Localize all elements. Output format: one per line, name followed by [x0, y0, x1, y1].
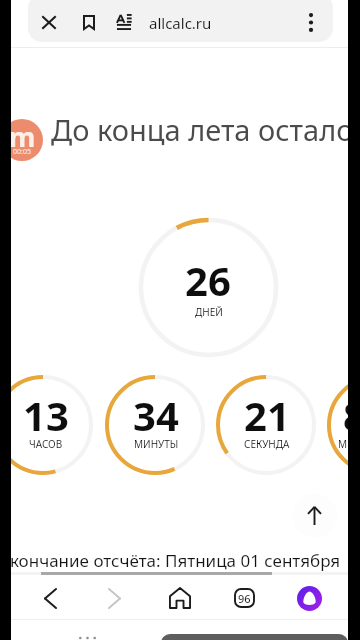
staticText: СЕКУНДА — [244, 437, 290, 451]
staticText: Окончание отсчёта: Пятница 01 сентября — [0, 549, 341, 572]
button[interactable]: Bookmark — [71, 3, 107, 41]
button[interactable]: More options — [293, 3, 329, 41]
staticText: 800 — [343, 388, 360, 442]
staticText: 00:05 — [13, 147, 31, 157]
staticText: 21 — [244, 388, 290, 442]
staticText: 26 — [185, 253, 231, 307]
button[interactable]: Forward — [82, 577, 147, 619]
button[interactable]: Alice assistant — [277, 577, 342, 619]
button[interactable]: Reader mode — [106, 3, 142, 41]
staticText: ДНЕЙ — [195, 305, 223, 319]
button[interactable]: Back — [18, 577, 82, 619]
button[interactable]: Close tab — [31, 3, 67, 41]
staticText: 13 — [23, 388, 69, 442]
button[interactable]: Scroll to top — [292, 493, 337, 538]
button[interactable]: Advertisement timer — [1, 119, 43, 161]
button[interactable]: Home — [147, 577, 212, 619]
staticText: До конца лета осталось — [51, 110, 360, 149]
staticText: m — [9, 119, 36, 155]
staticText: ЧАСОВ — [29, 437, 63, 451]
button[interactable]: Tabs: 96 open — [212, 577, 277, 619]
staticText: МИНУТЫ — [134, 437, 179, 451]
button[interactable]: allcalc.ru — [149, 13, 259, 33]
staticText: 34 — [133, 388, 179, 442]
staticText: МИЛЛИСЕКУНД — [338, 437, 360, 451]
staticText: allcalc.ru — [149, 13, 212, 33]
staticText: 96 — [238, 591, 251, 606]
